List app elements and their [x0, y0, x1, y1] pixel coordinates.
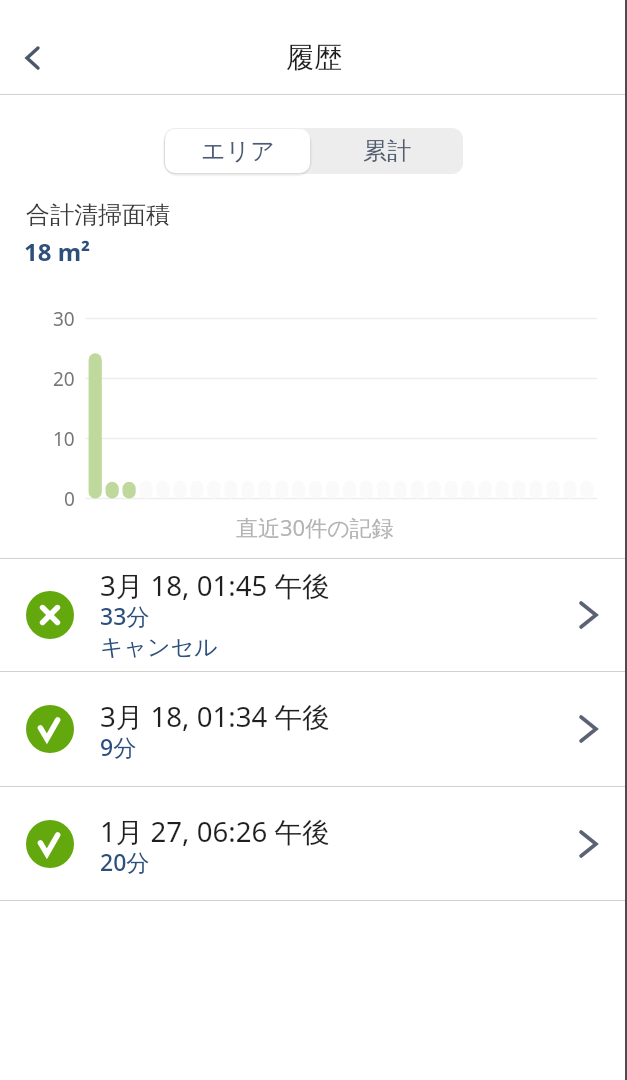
- staticText: 20分: [100, 846, 150, 877]
- staticText: 30: [53, 306, 75, 332]
- button[interactable]: Back: [7, 33, 57, 83]
- staticText: 10: [53, 426, 75, 452]
- staticText: 合計清掃面積: [26, 200, 170, 230]
- button[interactable]: 3月 18, 01:45 午後: [0, 559, 627, 671]
- staticText: エリア: [201, 136, 275, 166]
- staticText: 3月 18, 01:34 午後: [100, 697, 330, 735]
- button[interactable]: 3月 18, 01:34 午後: [0, 672, 627, 786]
- button[interactable]: 累計: [310, 128, 463, 174]
- staticText: 33分: [100, 600, 150, 631]
- staticText: 18 m²: [24, 235, 91, 268]
- staticText: 0: [64, 486, 75, 512]
- staticText: 履歴: [286, 40, 342, 75]
- staticText: 1月 27, 06:26 午後: [100, 812, 330, 850]
- staticText: 累計: [363, 136, 411, 166]
- staticText: 20: [53, 366, 75, 392]
- staticText: 3月 18, 01:45 午後: [100, 566, 330, 604]
- staticText: キャンセル: [100, 633, 218, 662]
- staticText: 9分: [100, 731, 137, 762]
- staticText: 直近30件の記録: [236, 512, 394, 542]
- button[interactable]: 1月 27, 06:26 午後: [0, 787, 627, 900]
- button[interactable]: エリア: [165, 129, 310, 173]
